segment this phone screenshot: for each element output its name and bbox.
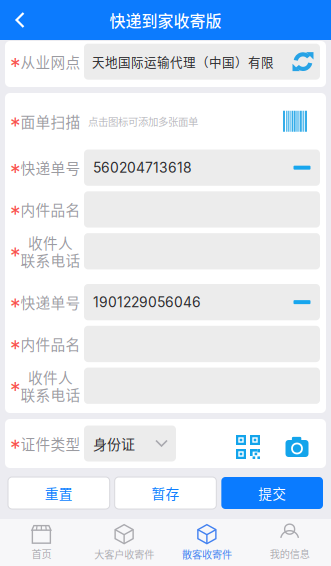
button[interactable]: 暂存 — [115, 477, 216, 509]
staticText: 从业网点 — [20, 51, 80, 72]
staticText: 快递到家收寄版 — [109, 8, 221, 32]
staticText: 联系电话 — [20, 384, 80, 405]
staticText: 内件品名 — [20, 199, 80, 220]
staticText: 天地国际运输代理（中国）有限 — [92, 53, 274, 71]
staticText: * — [10, 113, 21, 139]
staticText: 联系电话 — [20, 249, 80, 270]
staticText: 560204713618 — [93, 159, 192, 176]
staticText: 我的信息 — [270, 546, 310, 561]
staticText: * — [10, 159, 21, 185]
staticText: 内件品名 — [20, 333, 80, 354]
button[interactable]: 散客收寄件 — [165, 519, 248, 566]
button[interactable]: Remove parcel — [288, 149, 316, 186]
button[interactable]: 首页 — [0, 519, 83, 566]
button[interactable]: 大客户收寄件 — [83, 519, 166, 566]
staticText: * — [10, 201, 21, 227]
button[interactable]: Scan QR code — [229, 423, 267, 463]
button[interactable]: Take photo — [279, 423, 315, 463]
button[interactable]: Refresh — [288, 44, 318, 80]
button[interactable]: 提交 — [221, 477, 323, 509]
staticText: 身份证 — [93, 433, 135, 454]
staticText: * — [10, 377, 21, 403]
staticText: * — [10, 53, 21, 79]
staticText: 面单扫描 — [20, 111, 80, 132]
staticText: * — [10, 435, 21, 461]
staticText: 快递单号 — [20, 291, 80, 313]
staticText: 证件类型 — [20, 433, 80, 454]
staticText: 1901229056046 — [93, 294, 201, 311]
staticText: 大客户收寄件 — [94, 547, 154, 561]
staticText: 提交 — [258, 483, 286, 503]
staticText: * — [10, 335, 21, 361]
staticText: 散客收寄件 — [182, 547, 232, 561]
staticText: 快递单号 — [20, 157, 80, 178]
staticText: 收件人 — [28, 366, 73, 388]
button[interactable]: 我的信息 — [248, 519, 331, 566]
staticText: 暂存 — [151, 483, 179, 503]
button[interactable]: Scan barcode — [278, 106, 312, 136]
button[interactable]: 重置 — [8, 477, 110, 509]
staticText: * — [10, 294, 21, 319]
staticText: 重置 — [45, 483, 73, 503]
staticText: 收件人 — [28, 232, 73, 253]
staticText: 点击图标可添加多张面单 — [88, 114, 198, 129]
staticText: 首页 — [31, 546, 51, 561]
staticText: * — [10, 243, 21, 269]
button[interactable]: Remove parcel — [288, 284, 316, 320]
button[interactable]: Back — [0, 0, 40, 40]
